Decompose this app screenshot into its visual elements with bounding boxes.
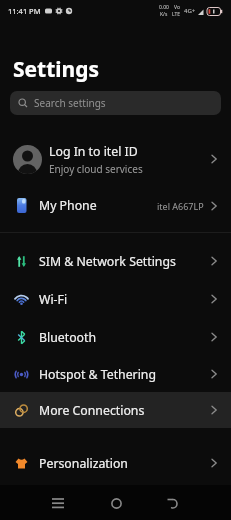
staticText: SIM & Network Settings [39,253,211,270]
button[interactable] [157,488,187,518]
button[interactable]: Wi-Fi [0,280,231,318]
staticText: Personalization [39,455,211,472]
button[interactable]: My Phone [0,187,231,224]
staticText: itel A667LP [157,200,204,212]
staticText: Settings [13,55,100,84]
staticText: Search settings [34,96,106,110]
staticText: My Phone [39,197,157,214]
staticText: Hotspot & Tethering [39,366,211,383]
staticText: Log In to itel ID [49,143,138,160]
button[interactable]: Search settings [10,91,221,115]
staticText: 11:41 PM [8,6,41,16]
button[interactable]: Hotspot & Tethering [0,356,231,392]
staticText: Enjoy cloud services [49,162,143,176]
staticText: K/s [160,11,168,18]
staticText: Vo [174,4,180,11]
button[interactable]: SIM & Network Settings [0,242,231,280]
staticText: More Connections [39,402,211,419]
button[interactable]: More Connections [0,392,231,428]
button[interactable]: Personalization [0,444,231,482]
staticText: 0.00 [159,4,169,11]
button[interactable]: Log In to itel ID [0,135,231,183]
staticText: Wi-Fi [39,291,211,308]
staticText: Bluetooth [39,329,211,346]
staticText: LTE [172,11,181,18]
button[interactable]: Bluetooth [0,318,231,356]
staticText: 4G+ [184,7,196,15]
button[interactable] [43,488,73,518]
button[interactable] [101,488,131,518]
